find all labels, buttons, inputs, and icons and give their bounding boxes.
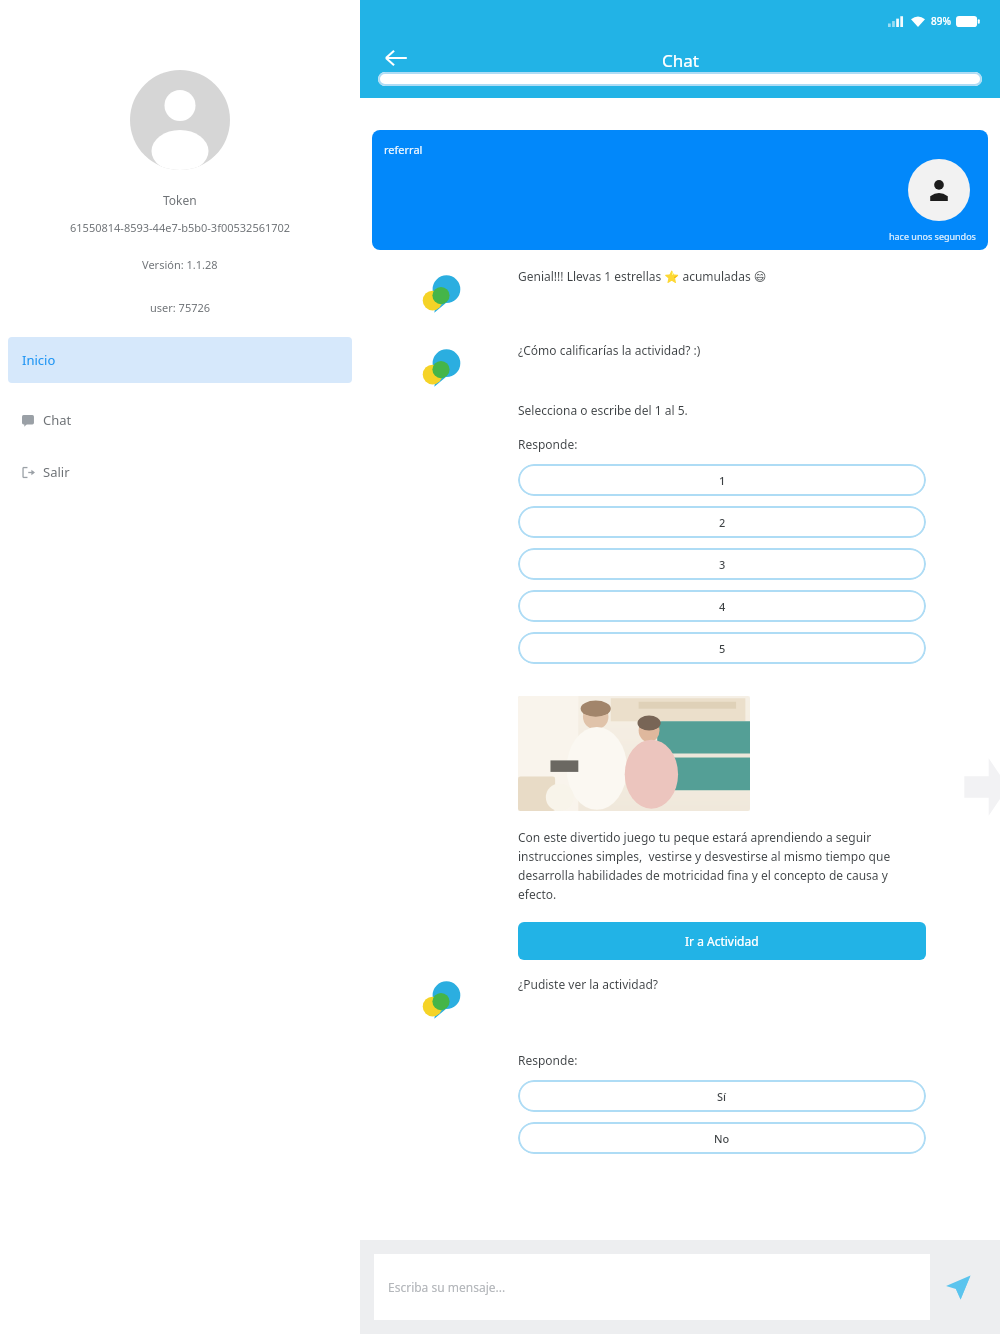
button[interactable]: 1 (518, 464, 926, 496)
staticText: ¿Pudiste ver la actividad? (518, 976, 659, 992)
button[interactable]: referral (372, 130, 988, 250)
button[interactable]: No (518, 1122, 926, 1154)
button[interactable]: 5 (518, 632, 926, 664)
staticText: Sí (717, 1089, 727, 1104)
button[interactable] (378, 72, 982, 86)
button[interactable]: Inicio (8, 337, 352, 383)
staticText: 5 (719, 641, 726, 656)
staticText: Ir a Actividad (685, 933, 759, 949)
button[interactable]: Ir a Actividad (518, 922, 926, 960)
staticText: referral (384, 142, 423, 157)
button[interactable]: Chat (0, 405, 360, 435)
staticText: 3 (719, 557, 726, 572)
staticText: 89% (931, 14, 951, 28)
staticText: Responde: (518, 436, 578, 452)
staticText: 2 (719, 515, 726, 530)
button[interactable]: 4 (518, 590, 926, 622)
staticText: hace unos segundos (889, 230, 976, 242)
staticText: Genial!!! Llevas 1 estrellas ⭐ acumulada… (518, 268, 767, 284)
staticText: Versión: 1.1.28 (142, 257, 218, 272)
button[interactable] (518, 696, 750, 811)
staticText: 61550814-8593-44e7-b5b0-3f00532561702 (70, 220, 291, 235)
button[interactable]: Back (370, 32, 422, 84)
button[interactable]: Sí (518, 1080, 926, 1112)
staticText: Salir (43, 463, 70, 481)
staticText: 4 (719, 599, 726, 614)
staticText: Escriba su mensaje... (388, 1279, 506, 1295)
staticText: Con este divertido juego tu peque estará… (518, 829, 926, 902)
staticText: Inicio (22, 351, 56, 369)
staticText: Chat (43, 411, 72, 429)
staticText: Token (163, 192, 197, 208)
button[interactable]: Send (930, 1259, 986, 1315)
staticText: Responde: (518, 1052, 578, 1068)
button[interactable]: Salir (0, 457, 360, 487)
button[interactable]: 2 (518, 506, 926, 538)
staticText: No (714, 1131, 730, 1146)
staticText: Chat (662, 49, 699, 72)
staticText: user: 75726 (150, 300, 211, 315)
button[interactable]: 3 (518, 548, 926, 580)
button[interactable]: Escriba su mensaje... (374, 1254, 930, 1320)
staticText: Selecciona o escribe del 1 al 5. (518, 402, 688, 418)
staticText: ¿Cómo calificarías la actividad? :) (518, 342, 701, 358)
staticText: 1 (719, 473, 726, 488)
